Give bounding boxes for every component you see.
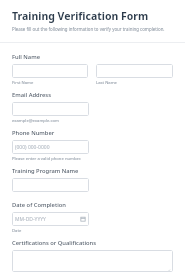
button[interactable] (12, 178, 89, 192)
staticText: Training Verification Form (12, 9, 149, 23)
staticText: MM-DD-YYYY (15, 216, 46, 223)
staticText: Please enter a valid phone number. (12, 156, 82, 162)
staticText: Training Program Name (12, 167, 79, 175)
staticText: example@example.com (12, 118, 59, 124)
button[interactable] (12, 102, 89, 116)
button[interactable]: Open date picker (80, 216, 86, 222)
button[interactable] (12, 64, 88, 78)
staticText: Phone Number (12, 129, 55, 137)
button[interactable]: (000) 000-0000 (12, 140, 89, 154)
button[interactable] (96, 64, 173, 78)
staticText: Full Name (12, 53, 40, 61)
staticText: Email Address (12, 91, 51, 99)
staticText: (000) 000-0000 (15, 144, 50, 151)
staticText: Date of Completion (12, 201, 66, 209)
button[interactable]: MM-DD-YYYY (12, 212, 89, 226)
staticText: Last Name (96, 80, 117, 86)
staticText: Please fill out the following informatio… (12, 26, 165, 32)
staticText: Date (12, 228, 22, 234)
staticText: First Name (12, 80, 34, 86)
staticText: Certifications or Qualifications (12, 239, 97, 247)
button[interactable] (12, 250, 173, 272)
